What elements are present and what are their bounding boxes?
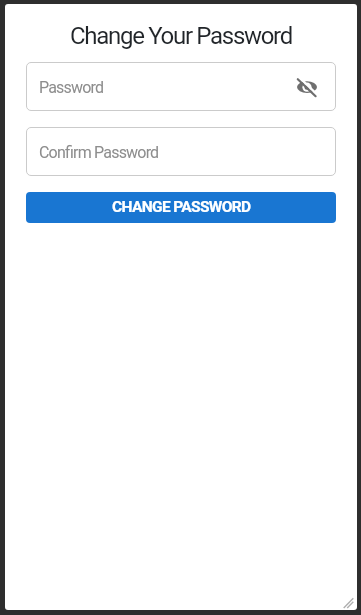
button[interactable]: Confirm Password: [26, 127, 336, 176]
staticText: CHANGE PASSWORD: [112, 198, 251, 216]
button[interactable]: CHANGE PASSWORD: [26, 192, 336, 223]
staticText: Password: [39, 78, 104, 97]
button[interactable]: Password: [26, 62, 336, 111]
staticText: Confirm Password: [39, 143, 159, 162]
staticText: Change Your Password: [70, 22, 292, 50]
